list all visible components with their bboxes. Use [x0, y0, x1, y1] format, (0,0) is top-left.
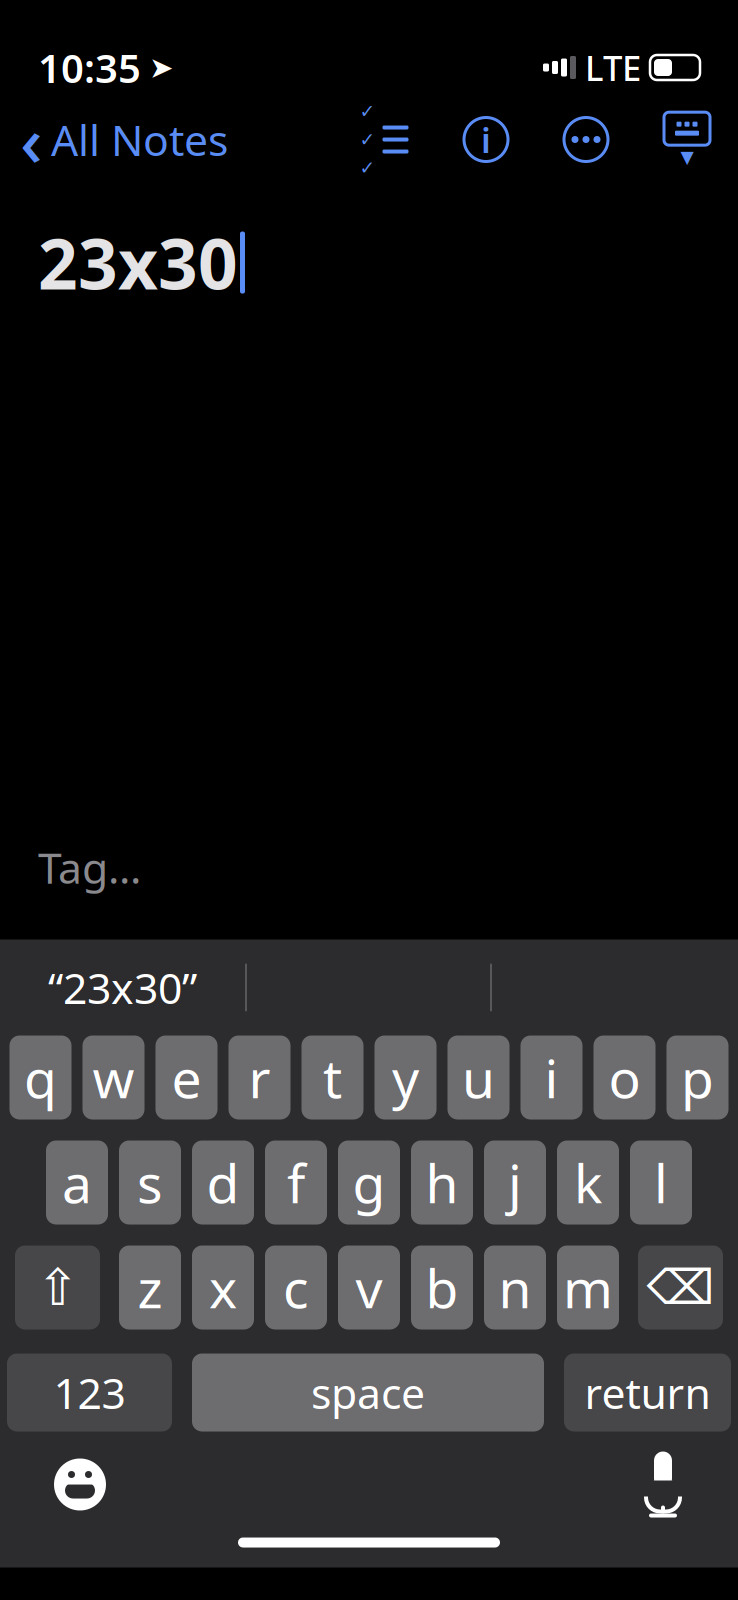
- staticText: ⌫: [646, 1260, 714, 1315]
- staticText: r: [248, 1042, 270, 1113]
- staticText: b: [425, 1252, 458, 1323]
- button[interactable]: return: [564, 1353, 731, 1431]
- button[interactable]: t: [301, 1035, 363, 1119]
- button[interactable]: x: [192, 1245, 254, 1329]
- button[interactable]: v: [338, 1245, 400, 1329]
- staticText: y: [392, 1042, 419, 1113]
- button[interactable]: h: [411, 1140, 473, 1224]
- button[interactable]: g: [338, 1140, 400, 1224]
- staticText: All Notes: [51, 111, 228, 168]
- staticText: 123: [53, 1364, 125, 1421]
- staticText: LTE: [585, 44, 641, 90]
- button[interactable]: u: [447, 1035, 509, 1119]
- button[interactable]: 123: [7, 1353, 172, 1431]
- staticText: h: [425, 1147, 458, 1218]
- button[interactable]: y: [374, 1035, 436, 1119]
- staticText: q: [24, 1042, 57, 1113]
- staticText: c: [283, 1252, 309, 1323]
- staticText: k: [574, 1147, 602, 1218]
- staticText: ✓: [359, 129, 375, 150]
- staticText: s: [137, 1147, 163, 1218]
- staticText: ▼: [680, 147, 693, 167]
- button[interactable]: c: [265, 1245, 327, 1329]
- button[interactable]: q: [9, 1035, 71, 1119]
- button[interactable]: Emoji: [0, 1440, 108, 1528]
- button[interactable]: z: [119, 1245, 181, 1329]
- staticText: z: [137, 1252, 162, 1323]
- staticText: p: [681, 1042, 714, 1113]
- button[interactable]: space: [192, 1353, 544, 1431]
- button[interactable]: m: [557, 1245, 619, 1329]
- staticText: Tag...: [38, 839, 141, 895]
- button[interactable]: Checklist: [358, 116, 410, 162]
- button[interactable]: Tag...: [0, 829, 141, 905]
- button[interactable]: i: [520, 1035, 582, 1119]
- button[interactable]: “23x30”: [0, 939, 245, 1035]
- staticText: ‹: [20, 93, 43, 186]
- staticText: 10:35: [38, 41, 141, 94]
- button[interactable]: e: [155, 1035, 217, 1119]
- button[interactable]: o: [593, 1035, 655, 1119]
- button[interactable]: j: [484, 1140, 546, 1224]
- button[interactable]: Dictation: [640, 1439, 738, 1529]
- button[interactable]: f: [265, 1140, 327, 1224]
- staticText: i: [544, 1042, 558, 1113]
- staticText: ⇧: [36, 1259, 78, 1316]
- button[interactable]: Delete: [638, 1245, 723, 1329]
- staticText: ✓: [359, 101, 375, 122]
- staticText: d: [206, 1147, 239, 1218]
- staticText: 23x30: [38, 216, 238, 309]
- staticText: ✓: [359, 157, 375, 178]
- staticText: a: [62, 1147, 92, 1218]
- staticText: o: [608, 1042, 640, 1113]
- staticText: j: [508, 1147, 522, 1218]
- button[interactable]: Shift: [15, 1245, 100, 1329]
- staticText: e: [171, 1042, 201, 1113]
- button[interactable]: k: [557, 1140, 619, 1224]
- button[interactable]: r: [228, 1035, 290, 1119]
- button[interactable]: s: [119, 1140, 181, 1224]
- button[interactable]: Hide Keyboard: [662, 113, 712, 165]
- button[interactable]: n: [484, 1245, 546, 1329]
- staticText: n: [498, 1252, 531, 1323]
- staticText: i: [481, 116, 491, 162]
- staticText: ➤: [149, 51, 174, 84]
- button[interactable]: Format: [462, 115, 510, 163]
- button[interactable]: a: [46, 1140, 108, 1224]
- staticText: f: [287, 1147, 305, 1218]
- button[interactable]: b: [411, 1245, 473, 1329]
- staticText: t: [323, 1042, 342, 1113]
- button[interactable]: ‹: [0, 109, 242, 169]
- staticText: space: [311, 1364, 425, 1421]
- staticText: u: [462, 1042, 495, 1113]
- button[interactable]: w: [82, 1035, 144, 1119]
- staticText: m: [563, 1252, 613, 1323]
- staticText: return: [584, 1364, 710, 1421]
- button[interactable]: More: [562, 115, 610, 163]
- staticText: w: [92, 1042, 134, 1113]
- staticText: “23x30”: [48, 959, 197, 1016]
- button[interactable]: d: [192, 1140, 254, 1224]
- button[interactable]: p: [666, 1035, 728, 1119]
- staticText: v: [355, 1252, 382, 1323]
- staticText: g: [352, 1147, 385, 1218]
- staticText: x: [209, 1252, 237, 1323]
- staticText: l: [654, 1147, 668, 1218]
- button[interactable]: l: [630, 1140, 692, 1224]
